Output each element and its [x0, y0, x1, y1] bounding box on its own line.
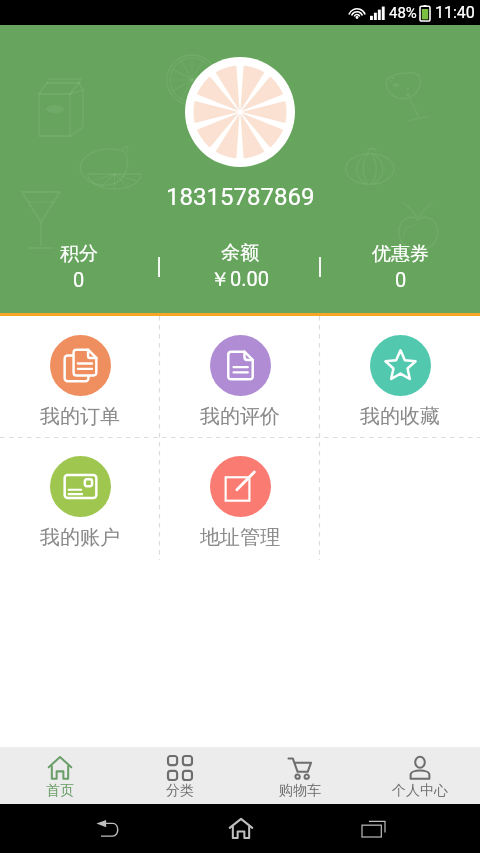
staticText: 个人中心 — [392, 782, 448, 800]
button[interactable]: 个人中心 — [360, 752, 480, 800]
staticText: 我的账户 — [40, 525, 120, 550]
button[interactable]: 优惠券 — [321, 242, 480, 291]
button[interactable]: 我的评价 — [160, 316, 320, 429]
staticText: 11:40 — [435, 3, 475, 22]
staticText: 首页 — [46, 782, 74, 800]
staticText: 积分 — [60, 242, 98, 266]
staticText: 地址管理 — [200, 525, 280, 550]
staticText: 18315787869 — [166, 183, 315, 211]
button[interactable]: 分类 — [120, 752, 240, 800]
staticText: 分类 — [166, 782, 194, 800]
staticText: 购物车 — [279, 782, 321, 800]
button[interactable]: 余额 — [160, 241, 319, 292]
button[interactable]: 我的账户 — [0, 437, 160, 550]
button[interactable]: 我的收藏 — [320, 316, 480, 429]
button[interactable]: 积分 — [0, 242, 158, 291]
staticText: 0 — [73, 268, 85, 291]
button[interactable]: 购物车 — [240, 752, 360, 800]
button[interactable]: Home — [174, 804, 307, 853]
staticText: 优惠券 — [372, 242, 429, 266]
staticText: ￥0.00 — [210, 267, 269, 292]
staticText: 我的评价 — [200, 404, 280, 429]
staticText: 我的收藏 — [360, 404, 440, 429]
button[interactable]: 我的订单 — [0, 316, 160, 429]
button[interactable]: 地址管理 — [160, 437, 320, 550]
staticText: 48% — [389, 4, 417, 22]
staticText: 0 — [395, 268, 407, 291]
staticText: 余额 — [221, 241, 259, 265]
button[interactable]: Back — [40, 804, 174, 853]
button[interactable]: 首页 — [0, 752, 120, 800]
button[interactable]: Recents — [307, 804, 440, 853]
staticText: 我的订单 — [40, 404, 120, 429]
